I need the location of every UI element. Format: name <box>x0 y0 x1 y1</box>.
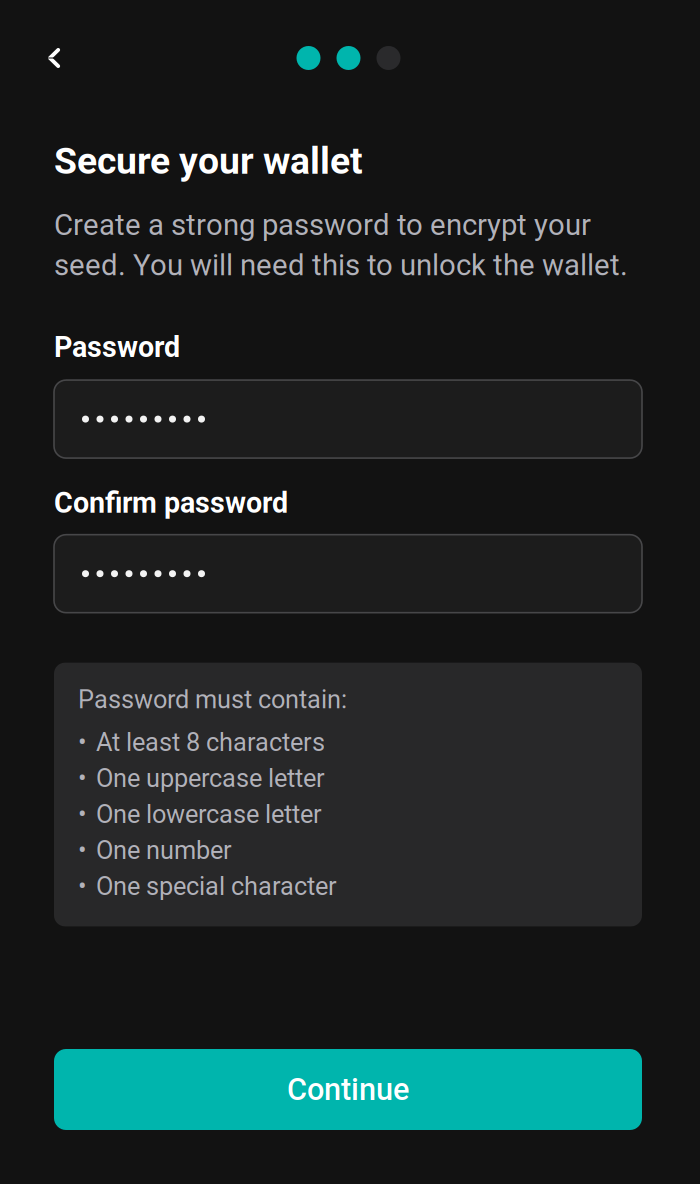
staticText: Continue <box>287 1071 409 1107</box>
staticText: • <box>78 871 87 901</box>
button[interactable]: Back <box>48 36 61 80</box>
button[interactable] <box>54 535 642 613</box>
staticText: One lowercase letter <box>96 799 322 829</box>
staticText: Password <box>54 330 180 364</box>
staticText: • <box>78 799 87 829</box>
staticText: One uppercase letter <box>96 763 325 793</box>
staticText: • <box>78 727 87 757</box>
staticText: • <box>78 835 87 865</box>
button[interactable] <box>54 380 642 458</box>
staticText: At least 8 characters <box>96 727 325 757</box>
staticText: • <box>78 763 87 793</box>
staticText: Secure your wallet <box>54 139 363 183</box>
staticText: Confirm password <box>54 486 288 520</box>
staticText: Create a strong password to encrypt your… <box>54 208 628 282</box>
staticText: One number <box>96 835 232 865</box>
staticText: One special character <box>96 871 337 901</box>
staticText: Password must contain: <box>78 685 347 714</box>
button[interactable]: Continue <box>54 1049 642 1130</box>
